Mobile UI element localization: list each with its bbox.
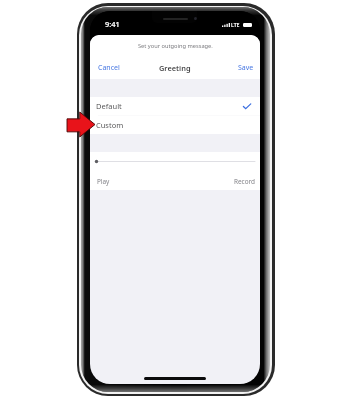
staticText: Set your outgoing message. [138, 42, 213, 50]
button[interactable]: Save [232, 59, 260, 76]
button[interactable]: Play [97, 177, 110, 186]
staticText: Record [234, 177, 255, 186]
button[interactable]: Record [234, 177, 255, 186]
staticText: Cancel [98, 63, 120, 73]
staticText: 9:41 [105, 19, 120, 29]
button[interactable]: Custom [90, 116, 260, 134]
staticText: Custom [96, 120, 124, 130]
staticText: Greeting [159, 63, 191, 73]
button[interactable]: Default [90, 97, 260, 115]
button[interactable]: Cancel [90, 59, 126, 76]
staticText: LTE [231, 21, 240, 28]
other: Pointer arrow [67, 112, 95, 137]
staticText: Default [96, 101, 122, 111]
staticText: Save [238, 63, 254, 73]
staticText: Play [97, 177, 110, 186]
